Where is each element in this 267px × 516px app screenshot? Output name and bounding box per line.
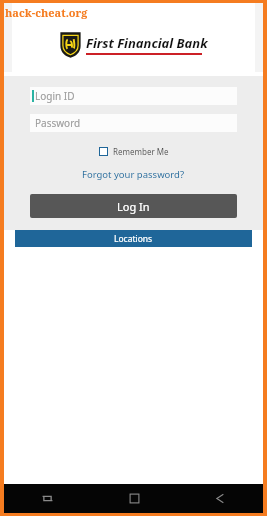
staticText: Forgot your password? — [82, 168, 185, 181]
button[interactable]: Recent apps — [4, 484, 91, 513]
staticText: Login ID — [35, 89, 75, 103]
button[interactable]: Locations — [15, 230, 252, 247]
button[interactable]: Forgot your password? — [78, 166, 189, 183]
button[interactable]: Remember Me — [97, 144, 171, 159]
staticText: Locations — [114, 233, 153, 245]
button[interactable]: Login ID — [30, 87, 237, 105]
staticText: First Financial Bank — [86, 34, 208, 52]
button[interactable]: Log In — [30, 194, 237, 218]
staticText: Remember Me — [113, 146, 169, 157]
button[interactable]: Password — [30, 114, 237, 132]
staticText: hack-cheat.org — [5, 5, 88, 20]
button[interactable]: Back — [177, 484, 263, 513]
staticText: Password — [35, 116, 81, 130]
staticText: Log In — [117, 199, 150, 214]
button[interactable]: Home — [91, 484, 177, 513]
